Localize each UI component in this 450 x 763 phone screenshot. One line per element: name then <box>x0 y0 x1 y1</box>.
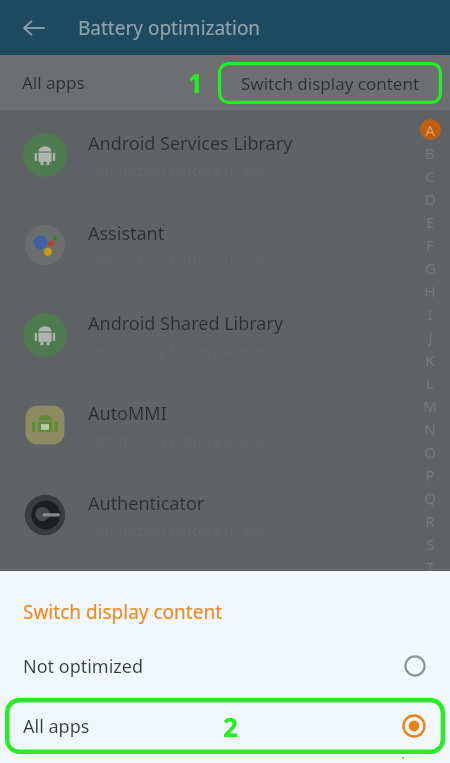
button[interactable]: E <box>417 210 443 233</box>
staticText: wsxdn.com <box>376 754 440 759</box>
button[interactable]: I <box>417 302 443 325</box>
button[interactable]: Q <box>417 486 443 509</box>
button[interactable]: B <box>417 141 443 164</box>
staticText: Android Shared Library <box>88 311 284 336</box>
staticText: 1 <box>188 65 203 100</box>
button[interactable]: D <box>417 187 443 210</box>
staticText: E <box>426 212 435 232</box>
staticText: G <box>425 258 436 278</box>
staticText: L <box>426 373 434 393</box>
button[interactable]: All apps <box>5 698 445 754</box>
staticText: Battery optimization <box>78 15 261 41</box>
button[interactable]: K <box>417 348 443 371</box>
staticText: All apps <box>23 714 90 739</box>
staticText: Android Services Library <box>88 131 293 156</box>
staticText: AutoMMI <box>88 401 167 426</box>
button[interactable]: Back <box>12 6 56 50</box>
button[interactable]: M <box>417 394 443 417</box>
staticText: I <box>427 304 433 324</box>
staticText: Not optimized <box>23 654 144 679</box>
staticText: P <box>425 465 435 485</box>
button[interactable]: Assistant <box>0 200 450 290</box>
staticText: 2 <box>223 709 238 744</box>
button[interactable]: A <box>417 118 443 141</box>
staticText: C <box>425 166 435 186</box>
button[interactable]: F <box>417 233 443 256</box>
button[interactable]: P <box>417 463 443 486</box>
button[interactable]: Switch display content <box>218 62 442 104</box>
staticText: O <box>424 442 436 462</box>
staticText: J <box>428 327 433 347</box>
staticText: B <box>425 143 435 163</box>
button[interactable]: J <box>417 325 443 348</box>
button[interactable]: O <box>417 440 443 463</box>
staticText: Switch display content <box>23 599 223 625</box>
staticText: H <box>424 281 436 301</box>
staticText: Q <box>424 488 436 508</box>
staticText: N <box>424 419 436 439</box>
staticText: All apps <box>22 71 85 94</box>
button[interactable]: Authenticator <box>0 470 450 560</box>
staticText: S <box>426 534 435 554</box>
staticText: Switch display content <box>241 72 420 95</box>
staticText: F <box>426 235 434 255</box>
staticText: D <box>425 189 436 209</box>
button[interactable]: G <box>417 256 443 279</box>
button[interactable]: AutoMMI <box>0 380 450 470</box>
staticText: Authenticator <box>88 491 205 516</box>
button[interactable]: T <box>417 555 443 578</box>
staticText: A <box>425 120 435 140</box>
button[interactable]: Android Services Library <box>0 110 450 200</box>
button[interactable]: H <box>417 279 443 302</box>
staticText: T <box>426 557 435 577</box>
staticText: K <box>425 350 435 370</box>
button[interactable]: Android Shared Library <box>0 290 450 380</box>
staticText: M <box>423 396 437 416</box>
button[interactable]: S <box>417 532 443 555</box>
button[interactable]: N <box>417 417 443 440</box>
button[interactable]: C <box>417 164 443 187</box>
staticText: Assistant <box>88 221 165 246</box>
button[interactable]: Not optimized <box>0 643 450 689</box>
button[interactable]: L <box>417 371 443 394</box>
button[interactable]: R <box>417 509 443 532</box>
staticText: R <box>425 511 435 531</box>
